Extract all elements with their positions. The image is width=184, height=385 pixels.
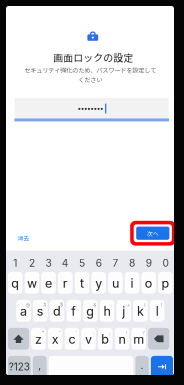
staticText: 4 bbox=[62, 257, 69, 269]
staticText: c bbox=[68, 331, 75, 347]
staticText: 0 bbox=[162, 257, 168, 269]
staticText: , bbox=[38, 359, 41, 371]
button[interactable]: Delete bbox=[148, 328, 169, 350]
button[interactable]: Symbols bbox=[8, 356, 31, 378]
button[interactable]: o bbox=[141, 272, 156, 294]
staticText: 2 bbox=[29, 257, 35, 269]
button[interactable]: 消去 bbox=[14, 232, 32, 245]
staticText: ; bbox=[109, 330, 110, 336]
staticText: p bbox=[161, 275, 169, 291]
staticText: i bbox=[131, 275, 134, 291]
staticText: ) bbox=[161, 302, 163, 308]
staticText: d bbox=[53, 303, 61, 319]
staticText: ?123 bbox=[9, 361, 30, 373]
staticText: t bbox=[80, 275, 84, 291]
staticText: . bbox=[141, 359, 144, 371]
button[interactable]: s bbox=[33, 300, 48, 322]
button[interactable]: p bbox=[158, 272, 173, 294]
staticText: 9 bbox=[146, 257, 152, 269]
button[interactable]: j bbox=[116, 300, 131, 322]
button[interactable]: t bbox=[75, 272, 89, 294]
button[interactable]: v bbox=[81, 328, 96, 350]
staticText: ' bbox=[76, 330, 77, 336]
staticText: & bbox=[93, 302, 96, 308]
staticText: u bbox=[112, 275, 119, 291]
staticText: v bbox=[85, 331, 92, 347]
staticText: k bbox=[137, 303, 144, 319]
staticText: ? bbox=[142, 330, 144, 336]
button[interactable]: Comma bbox=[33, 356, 47, 378]
button[interactable]: y bbox=[91, 272, 106, 294]
staticText: f bbox=[71, 303, 76, 319]
staticText: $ bbox=[60, 302, 63, 308]
staticText: + bbox=[127, 302, 130, 308]
button[interactable]: h bbox=[100, 300, 114, 322]
button[interactable]: r bbox=[58, 272, 73, 294]
staticText: g bbox=[86, 303, 94, 319]
staticText: x bbox=[52, 331, 59, 347]
button[interactable]: q bbox=[8, 272, 22, 294]
button[interactable]: e bbox=[41, 272, 56, 294]
staticText: y bbox=[95, 275, 102, 291]
staticText: l bbox=[156, 303, 159, 319]
staticText: ! bbox=[126, 330, 127, 336]
button[interactable]: u bbox=[108, 272, 123, 294]
button[interactable]: Shift bbox=[8, 328, 29, 350]
staticText: " bbox=[59, 330, 61, 336]
staticText: 3 bbox=[46, 257, 52, 269]
staticText: e bbox=[45, 275, 52, 291]
staticText: j bbox=[122, 303, 125, 319]
staticText: 7 bbox=[112, 257, 118, 269]
button[interactable]: a bbox=[16, 300, 31, 322]
button[interactable]: i bbox=[125, 272, 139, 294]
staticText: w bbox=[27, 275, 37, 291]
staticText: 6 bbox=[96, 257, 102, 269]
staticText: o bbox=[145, 275, 153, 291]
button[interactable]: Space bbox=[49, 356, 133, 378]
button[interactable]: k bbox=[133, 300, 148, 322]
staticText: 画面ロックの設定 bbox=[53, 50, 133, 64]
staticText: 1 bbox=[13, 257, 17, 269]
staticText: 消去 bbox=[17, 234, 29, 242]
button[interactable]: d bbox=[50, 300, 64, 322]
staticText: n bbox=[118, 331, 125, 347]
button[interactable]: m bbox=[131, 328, 146, 350]
staticText: h bbox=[103, 303, 110, 319]
staticText: # bbox=[43, 302, 46, 308]
button[interactable]: n bbox=[115, 328, 129, 350]
button[interactable]: x bbox=[48, 328, 62, 350]
staticText: q bbox=[11, 275, 19, 291]
staticText: ( bbox=[144, 302, 146, 308]
staticText: 8 bbox=[129, 257, 135, 269]
button[interactable]: b bbox=[98, 328, 113, 350]
button[interactable]: Period bbox=[135, 356, 149, 378]
staticText: * bbox=[42, 330, 44, 336]
button[interactable]: f bbox=[66, 300, 81, 322]
staticText: セキュリティ強化のため、パスワードを設定して bbox=[24, 65, 156, 75]
button[interactable]: 次へ bbox=[136, 227, 169, 240]
staticText: z bbox=[35, 331, 42, 347]
button[interactable]: l bbox=[150, 300, 164, 322]
button[interactable]: z bbox=[31, 328, 46, 350]
staticText: a bbox=[20, 303, 27, 319]
button[interactable]: c bbox=[65, 328, 79, 350]
staticText: 次へ bbox=[147, 229, 159, 238]
staticText: : bbox=[93, 330, 94, 336]
staticText: r bbox=[63, 275, 68, 291]
staticText: - bbox=[110, 302, 112, 308]
staticText: b bbox=[101, 331, 109, 347]
staticText: 5 bbox=[79, 257, 85, 269]
staticText: s bbox=[37, 303, 44, 319]
button[interactable]: w bbox=[25, 272, 39, 294]
button[interactable]: g bbox=[83, 300, 98, 322]
staticText: m bbox=[133, 331, 144, 347]
button[interactable]: Enter bbox=[151, 356, 173, 378]
staticText: ください bbox=[78, 75, 102, 84]
staticText: @ bbox=[26, 302, 31, 308]
